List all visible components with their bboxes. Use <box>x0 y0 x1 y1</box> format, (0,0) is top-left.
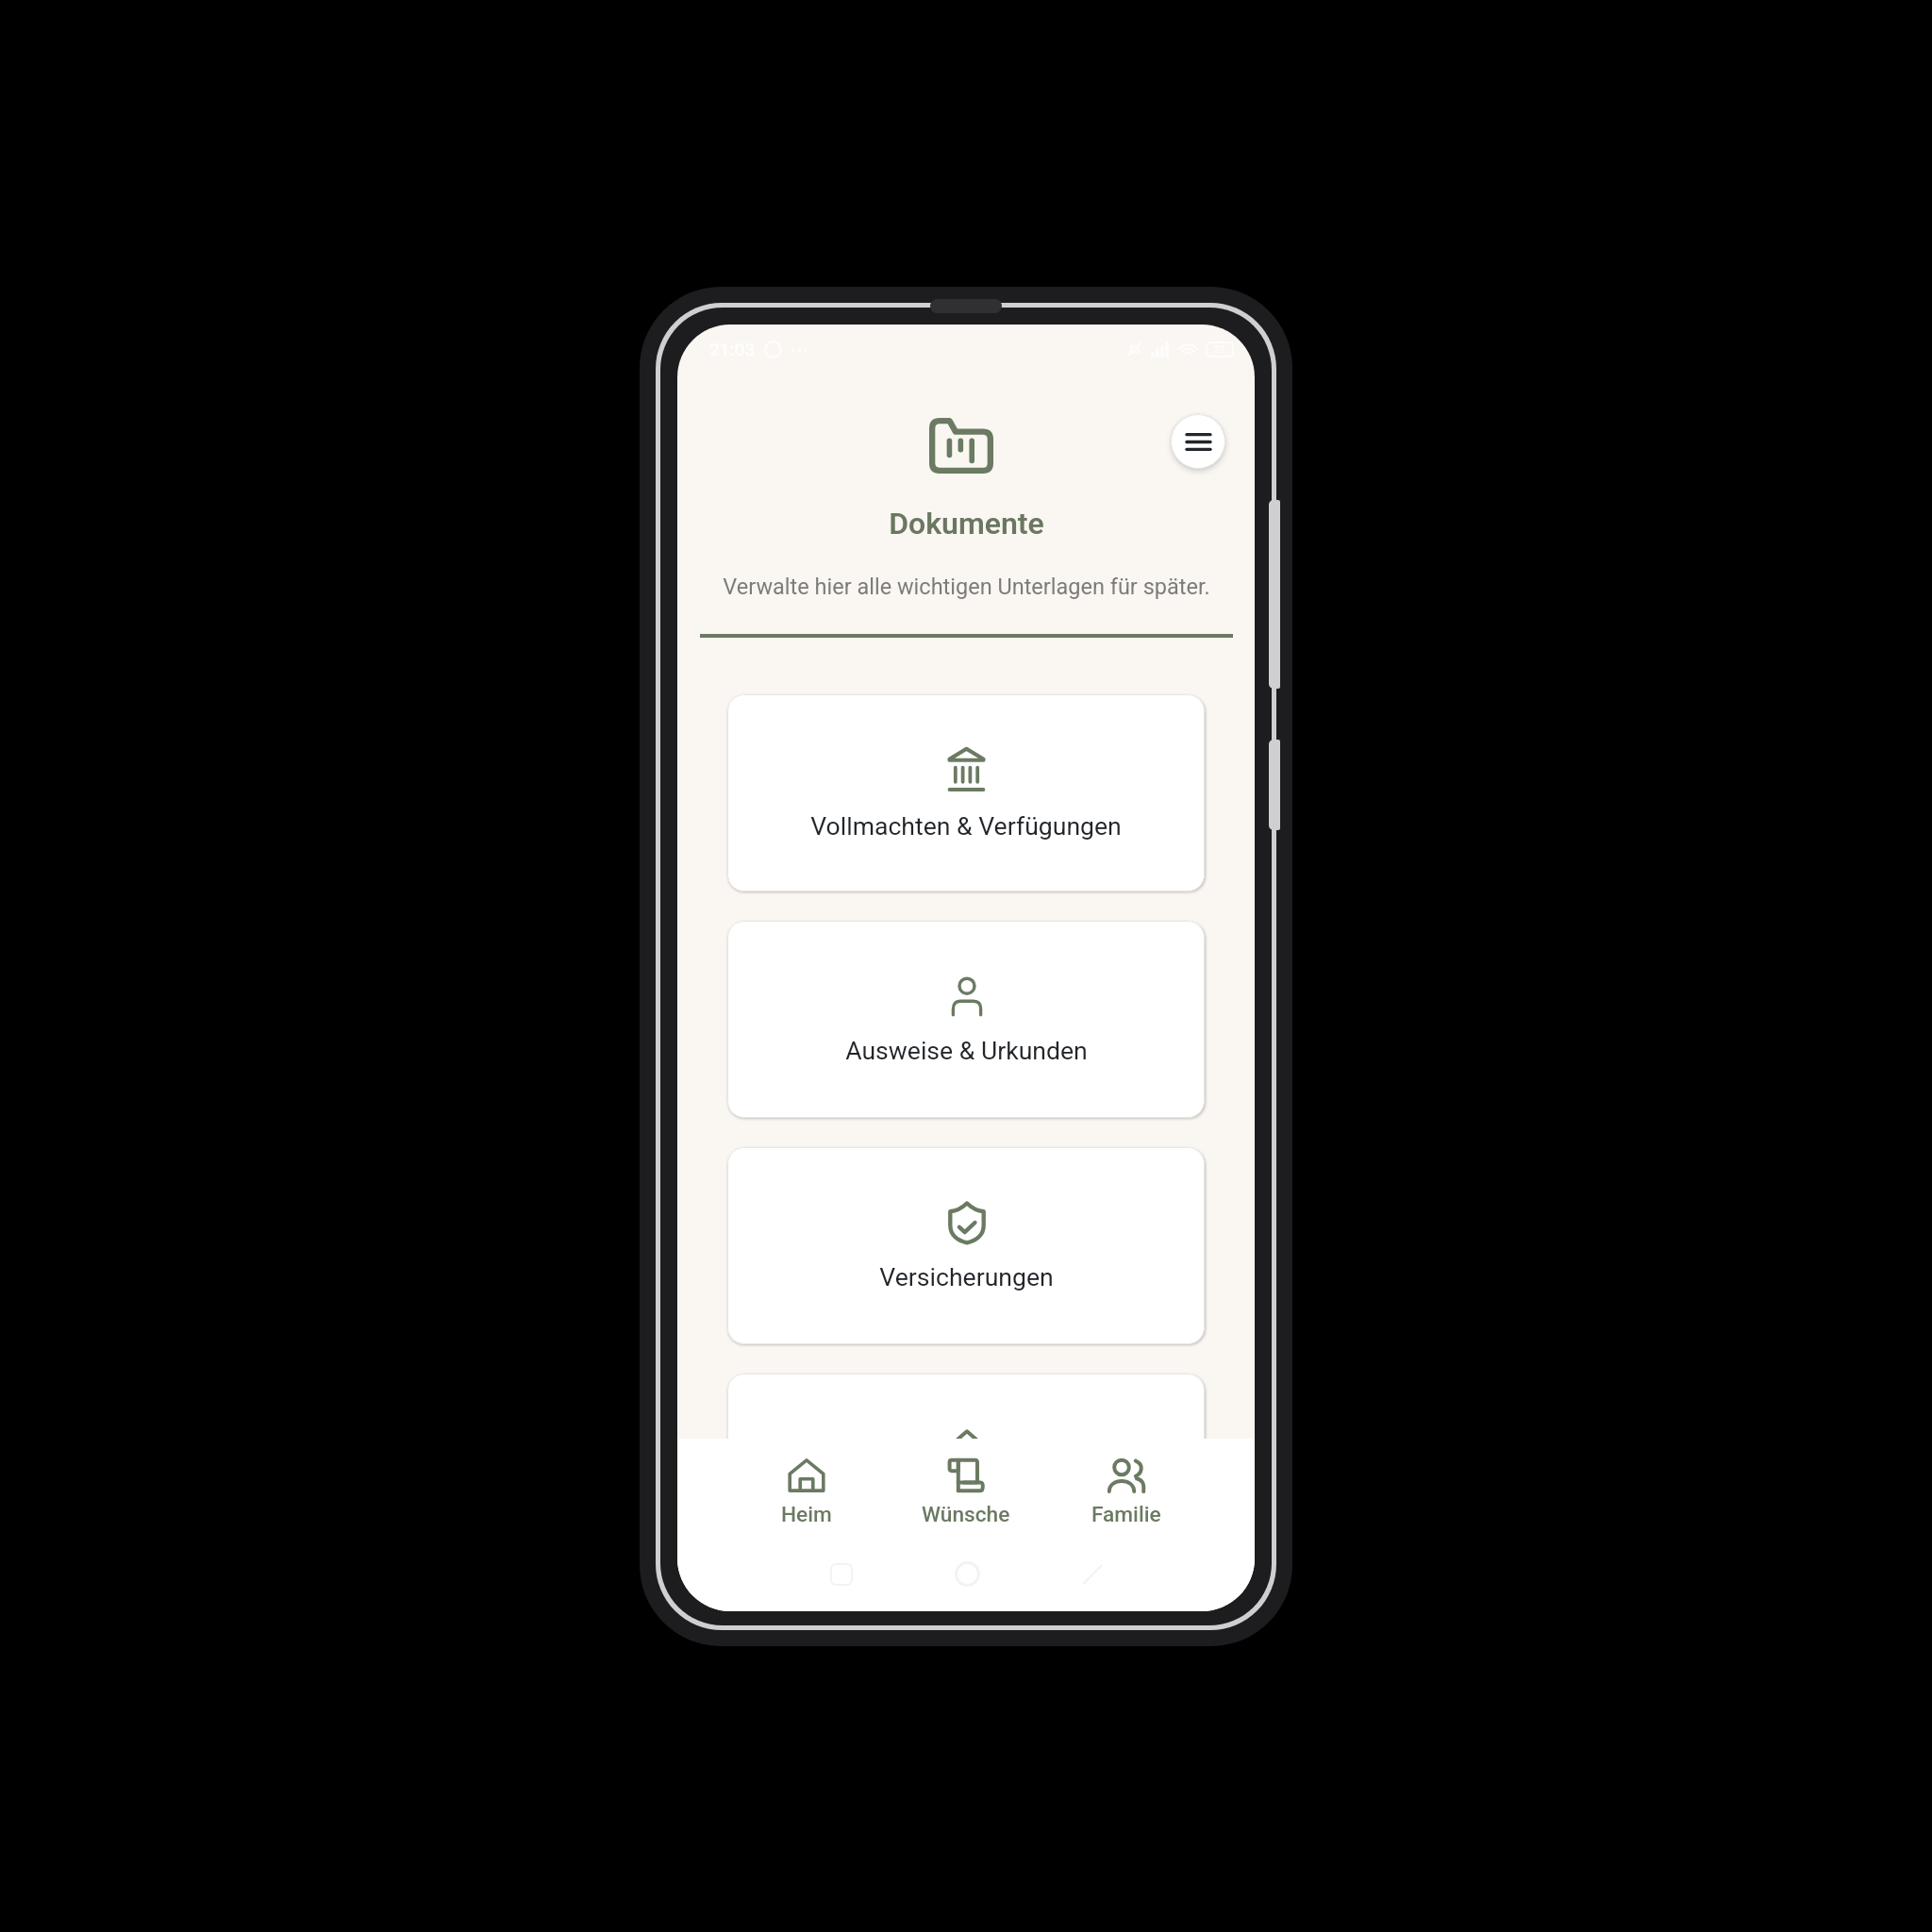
button[interactable]: Familie <box>1046 1454 1207 1531</box>
button[interactable]: Heim <box>726 1454 886 1531</box>
button[interactable]: Ausweise & Urkunden <box>727 921 1205 1118</box>
staticText: 23 <box>1214 344 1225 356</box>
button[interactable]: Versicherungen <box>727 1147 1205 1344</box>
staticText: Familie <box>1091 1502 1161 1527</box>
button[interactable]: Wünsche <box>886 1454 1046 1531</box>
button[interactable]: Vollmachten & Verfügungen <box>727 694 1205 891</box>
staticText: Wünsche <box>922 1502 1010 1527</box>
staticText: 21:03 <box>709 339 756 359</box>
button[interactable]: Menü <box>1171 414 1225 469</box>
button[interactable]: Wohnen & Eigentum <box>727 1374 1205 1571</box>
staticText: Ausweise & Urkunden <box>845 1036 1088 1065</box>
staticText: Dokumente <box>889 506 1044 541</box>
staticText: Vollmachten & Verfügungen <box>810 811 1122 841</box>
staticText: Wohnen & Eigentum <box>854 1488 1079 1517</box>
staticText: Verwalte hier alle wichtigen Unterlagen … <box>723 574 1210 600</box>
staticText: Versicherungen <box>879 1262 1054 1291</box>
staticText: Heim <box>781 1502 832 1527</box>
